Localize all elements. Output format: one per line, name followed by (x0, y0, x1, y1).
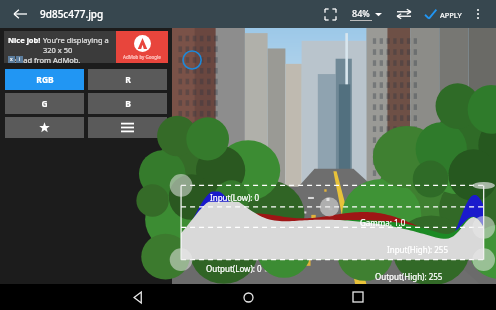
staticText: Input(Low): 0 (210, 192, 260, 203)
button[interactable]: G (5, 93, 84, 114)
staticText: Output(High): 255 (375, 271, 443, 282)
staticText: You're displaying a 320 x 50 (43, 35, 114, 55)
button[interactable]: APPLY (422, 4, 464, 25)
staticText: G (41, 98, 48, 110)
staticText: Nice job! (8, 35, 41, 45)
staticText: Gamma: 1.0 (360, 217, 406, 228)
button[interactable]: B (88, 93, 167, 114)
staticText: Output(Low): 0 (206, 263, 262, 274)
button[interactable]: Back (8, 2, 32, 26)
button[interactable]: Nice job! (4, 31, 168, 63)
staticText: i (19, 56, 21, 63)
button[interactable]: Fullscreen (318, 2, 342, 26)
button[interactable]: RGB (5, 69, 84, 90)
button[interactable]: 84% (348, 3, 384, 25)
staticText: 9d85c477.jpg (40, 7, 104, 21)
staticText: R (125, 74, 131, 86)
staticText: B (125, 98, 131, 110)
button[interactable]: Back (83, 284, 193, 310)
staticText: Input(High): 255 (387, 244, 449, 255)
button[interactable]: Presets (88, 117, 167, 138)
staticText: x (10, 56, 13, 63)
staticText: 84% (352, 7, 370, 19)
button[interactable]: Recent apps (303, 284, 413, 310)
button[interactable]: Favourite (5, 117, 84, 138)
staticText: AdMob by Google (123, 54, 161, 60)
button[interactable]: Home (193, 284, 303, 310)
button[interactable]: R (88, 69, 167, 90)
button[interactable]: Compare (392, 2, 416, 26)
button[interactable]: More options (468, 4, 488, 24)
staticText: test ad from AdMob. (8, 55, 81, 63)
staticText: APPLY (440, 10, 462, 20)
staticText: RGB (36, 74, 54, 86)
